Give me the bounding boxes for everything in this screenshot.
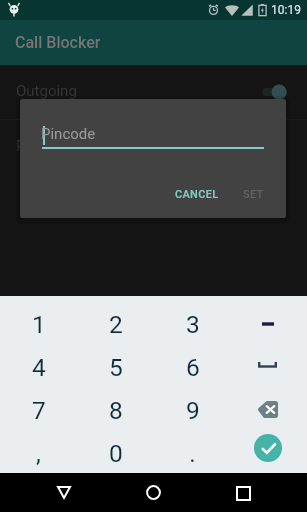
staticText: Outgoing	[16, 82, 77, 100]
button[interactable]: Outgoing	[0, 65, 307, 119]
button[interactable]: Minus	[231, 303, 307, 346]
staticText: Pincode	[16, 137, 71, 155]
button[interactable]: 8	[77, 389, 154, 432]
button[interactable]: Pincode	[0, 120, 307, 174]
button[interactable]: Backspace	[231, 389, 307, 432]
button[interactable]: 5	[77, 346, 154, 389]
staticText: .	[189, 439, 196, 468]
staticText: 1	[32, 310, 46, 339]
staticText: Pincode	[41, 125, 96, 143]
button[interactable]: Space	[231, 346, 307, 389]
staticText: 3	[186, 310, 200, 339]
button[interactable]: 1	[0, 303, 77, 346]
button[interactable]: 6	[154, 346, 231, 389]
staticText: 6	[186, 353, 200, 382]
button[interactable]: Back	[44, 473, 84, 512]
staticText: 2	[109, 310, 123, 339]
button[interactable]: .	[154, 432, 231, 475]
button[interactable]: Call Blocker	[0, 20, 307, 65]
staticText: 4	[32, 353, 46, 382]
button[interactable]: 7	[0, 389, 77, 432]
button[interactable]: 0	[77, 432, 154, 475]
staticText: SET	[243, 188, 264, 201]
button[interactable]: 4	[0, 346, 77, 389]
staticText: Call Blocker	[15, 33, 101, 52]
staticText: 9	[186, 396, 200, 425]
button[interactable]: 9	[154, 389, 231, 432]
staticText: ,	[36, 439, 41, 468]
button[interactable]: Home	[134, 473, 174, 512]
staticText: 0	[109, 439, 123, 468]
button[interactable]: Done	[231, 432, 307, 475]
staticText: 5	[109, 353, 123, 382]
staticText: CANCEL	[175, 188, 219, 201]
button[interactable]: 2	[77, 303, 154, 346]
staticText: 8	[109, 396, 123, 425]
button[interactable]: 3	[154, 303, 231, 346]
staticText: 10:19	[271, 3, 301, 17]
button[interactable]: Recents	[224, 473, 264, 512]
staticText: 7	[32, 396, 46, 425]
button[interactable]: CANCEL	[168, 179, 226, 209]
button[interactable]: ,	[0, 432, 77, 475]
button[interactable]: SET	[235, 179, 272, 209]
